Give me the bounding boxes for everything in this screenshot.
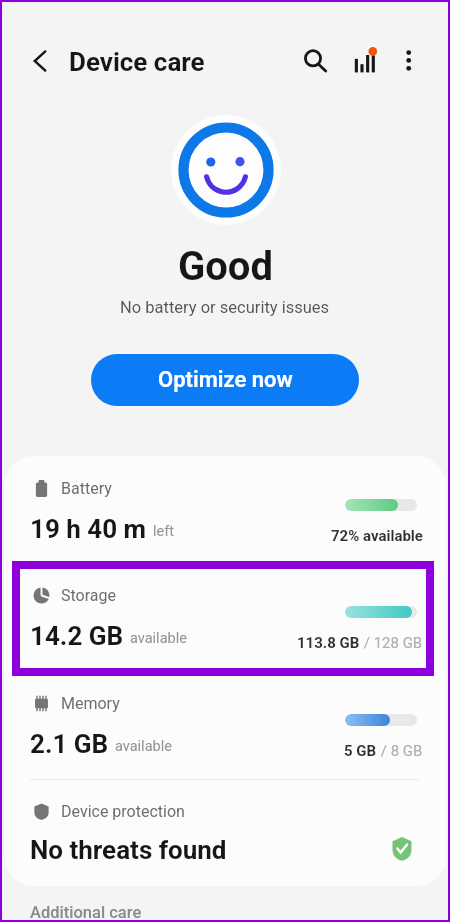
- button[interactable]: Optimize now: [91, 354, 359, 406]
- button[interactable]: Search: [295, 40, 331, 76]
- staticText: No threats found: [30, 835, 227, 865]
- button[interactable]: Storage: [4, 563, 446, 670]
- button[interactable]: Device protection: [4, 779, 446, 886]
- staticText: / 8 GB: [377, 742, 423, 760]
- staticText: available: [115, 738, 172, 755]
- staticText: 72% available: [331, 527, 423, 545]
- staticText: left: [153, 523, 174, 540]
- button[interactable]: Usage: [348, 40, 386, 78]
- staticText: Storage: [61, 586, 116, 605]
- staticText: No battery or security issues: [120, 298, 330, 317]
- button[interactable]: Back: [21, 42, 59, 80]
- staticText: Additional care: [30, 903, 142, 922]
- staticText: 2.1 GB: [30, 729, 109, 759]
- button[interactable]: Memory: [4, 671, 446, 778]
- staticText: Device protection: [61, 802, 185, 821]
- staticText: 14.2 GB: [30, 621, 124, 651]
- staticText: Memory: [61, 694, 120, 713]
- staticText: 5 GB: [344, 742, 377, 760]
- staticText: Optimize now: [158, 367, 293, 393]
- button[interactable]: More options: [390, 41, 428, 79]
- staticText: 19 h 40 m: [30, 514, 147, 544]
- button[interactable]: Battery: [4, 456, 446, 563]
- staticText: available: [130, 630, 187, 647]
- staticText: / 128 GB: [360, 634, 423, 652]
- staticText: Device care: [69, 47, 205, 77]
- staticText: 113.8 GB: [297, 634, 360, 652]
- staticText: Battery: [61, 479, 112, 498]
- staticText: Good: [178, 243, 273, 290]
